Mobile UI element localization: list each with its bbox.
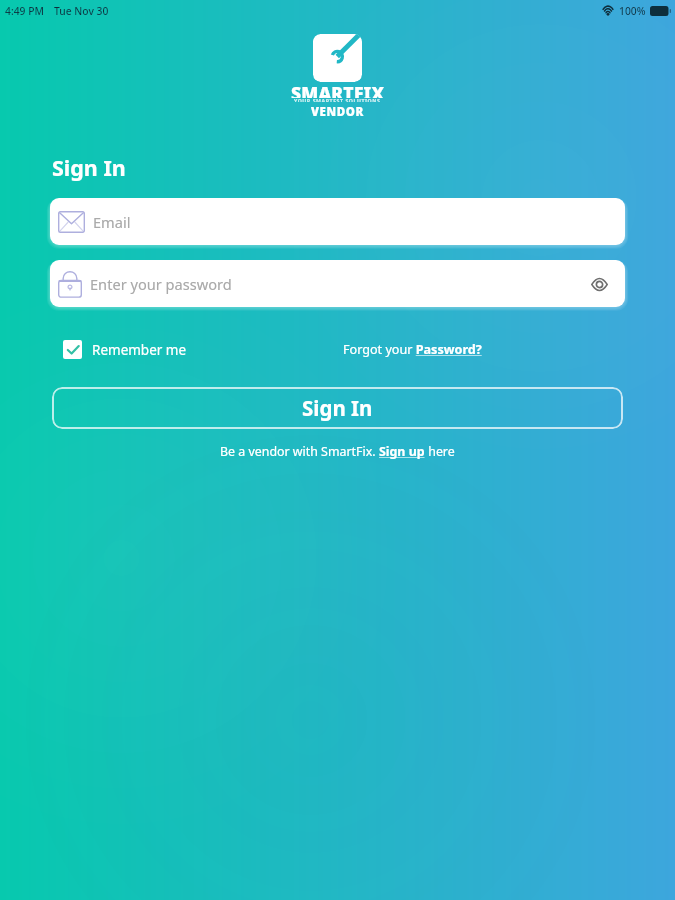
- button[interactable]: Sign up: [379, 443, 425, 460]
- staticText: Tue Nov 30: [54, 4, 109, 18]
- staticText: Remember me: [92, 341, 187, 359]
- button[interactable]: Sign In: [52, 387, 623, 429]
- staticText: VENDOR: [311, 104, 364, 117]
- button[interactable]: Remember me: [63, 340, 337, 359]
- staticText: SMARTFIX: [291, 81, 385, 98]
- staticText: Be a vendor with SmartFix.: [220, 443, 379, 460]
- staticText: Enter your password: [90, 274, 232, 294]
- staticText: 4:49 PM: [5, 4, 44, 18]
- staticText: here: [425, 443, 455, 460]
- button[interactable]: Forgot your Password?: [343, 341, 675, 358]
- staticText: Forgot your Password?: [343, 341, 482, 358]
- staticText: Sign up: [379, 443, 425, 460]
- staticText: Sign In: [302, 394, 373, 422]
- staticText: 100%: [619, 4, 646, 18]
- button[interactable]: Email: [50, 198, 625, 245]
- staticText: Sign In: [52, 153, 126, 181]
- staticText: YOUR SMARTEST SOLUTIONS: [294, 97, 381, 102]
- button[interactable]: Enter your password: [50, 260, 625, 307]
- button[interactable]: Show password: [587, 272, 611, 296]
- staticText: Email: [93, 212, 131, 232]
